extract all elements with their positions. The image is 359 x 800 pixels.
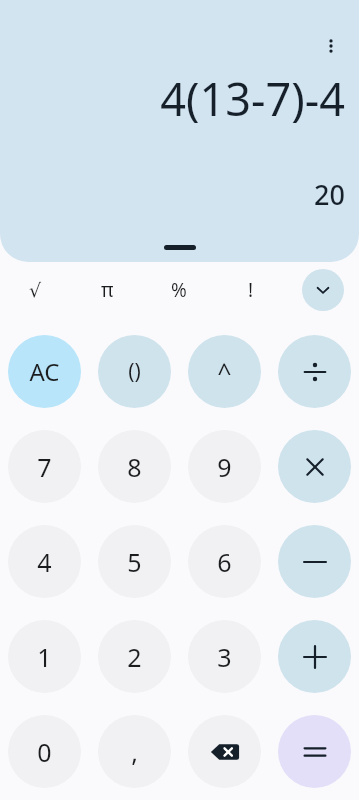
staticText: 9 <box>217 450 232 484</box>
button[interactable]: Expand panel <box>164 245 196 250</box>
staticText: % <box>171 277 187 303</box>
button[interactable]: 6 <box>188 525 261 598</box>
staticText: 20 <box>314 176 345 213</box>
button[interactable]: 9 <box>188 430 261 503</box>
button[interactable]: 7 <box>8 430 81 503</box>
button[interactable]: Minus <box>278 525 351 598</box>
staticText: 2 <box>127 640 142 674</box>
staticText: 4 <box>37 545 52 579</box>
staticText: 1 <box>37 640 52 674</box>
button[interactable]: Plus <box>278 620 351 693</box>
staticText: 6 <box>217 545 232 579</box>
button[interactable]: , <box>98 715 171 788</box>
button[interactable]: 4 <box>8 525 81 598</box>
button[interactable]: 5 <box>98 525 171 598</box>
button[interactable]: () <box>98 335 171 408</box>
staticText: √ <box>29 279 42 301</box>
staticText: 7 <box>37 450 52 484</box>
button[interactable]: 0 <box>8 715 81 788</box>
staticText: π <box>101 277 114 303</box>
button[interactable]: AC <box>8 335 81 408</box>
button[interactable]: More functions <box>302 269 344 311</box>
staticText: ^ <box>217 355 232 389</box>
button[interactable]: √ <box>0 265 71 315</box>
button[interactable]: Equals <box>278 715 351 788</box>
staticText: 3 <box>217 640 232 674</box>
button[interactable]: ! <box>215 265 287 315</box>
staticText: 4(13-7)-4 <box>160 68 345 129</box>
button[interactable]: 3 <box>188 620 261 693</box>
staticText: () <box>128 357 141 386</box>
staticText: ! <box>248 277 254 303</box>
button[interactable]: Multiply <box>278 430 351 503</box>
staticText: AC <box>29 355 60 388</box>
button[interactable]: 2 <box>98 620 171 693</box>
button[interactable]: ^ <box>188 335 261 408</box>
staticText: 5 <box>127 545 142 579</box>
staticText: 0 <box>37 735 52 769</box>
button[interactable]: Divide <box>278 335 351 408</box>
staticText: 8 <box>127 450 142 484</box>
button[interactable]: More options <box>311 26 351 66</box>
button[interactable]: Backspace <box>188 715 261 788</box>
button[interactable]: % <box>143 265 215 315</box>
button[interactable]: π <box>71 265 143 315</box>
button[interactable]: 1 <box>8 620 81 693</box>
button[interactable]: 8 <box>98 430 171 503</box>
staticText: , <box>131 735 138 769</box>
